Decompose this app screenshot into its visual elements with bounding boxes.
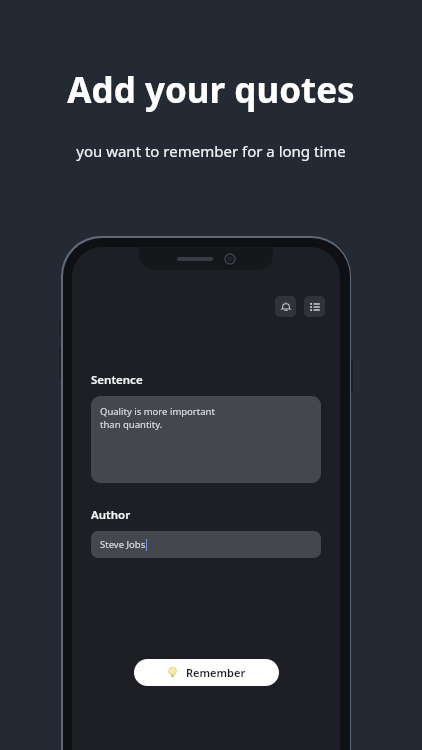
staticText: Add your quotes xyxy=(67,66,355,114)
staticText: Author xyxy=(91,507,131,523)
staticText: Remember xyxy=(186,665,246,680)
button[interactable]: Notifications xyxy=(275,296,296,317)
staticText: Steve Jobs xyxy=(100,538,146,551)
staticText: you want to remember for a long time xyxy=(76,141,346,161)
button[interactable]: Remember xyxy=(134,659,279,686)
staticText: Sentence xyxy=(91,372,143,388)
staticText: Quality is more important than quantity. xyxy=(100,405,215,431)
button[interactable]: Quality is more important than quantity. xyxy=(91,396,321,483)
button[interactable]: Quote list xyxy=(304,296,325,317)
button[interactable]: Steve Jobs xyxy=(91,531,321,558)
